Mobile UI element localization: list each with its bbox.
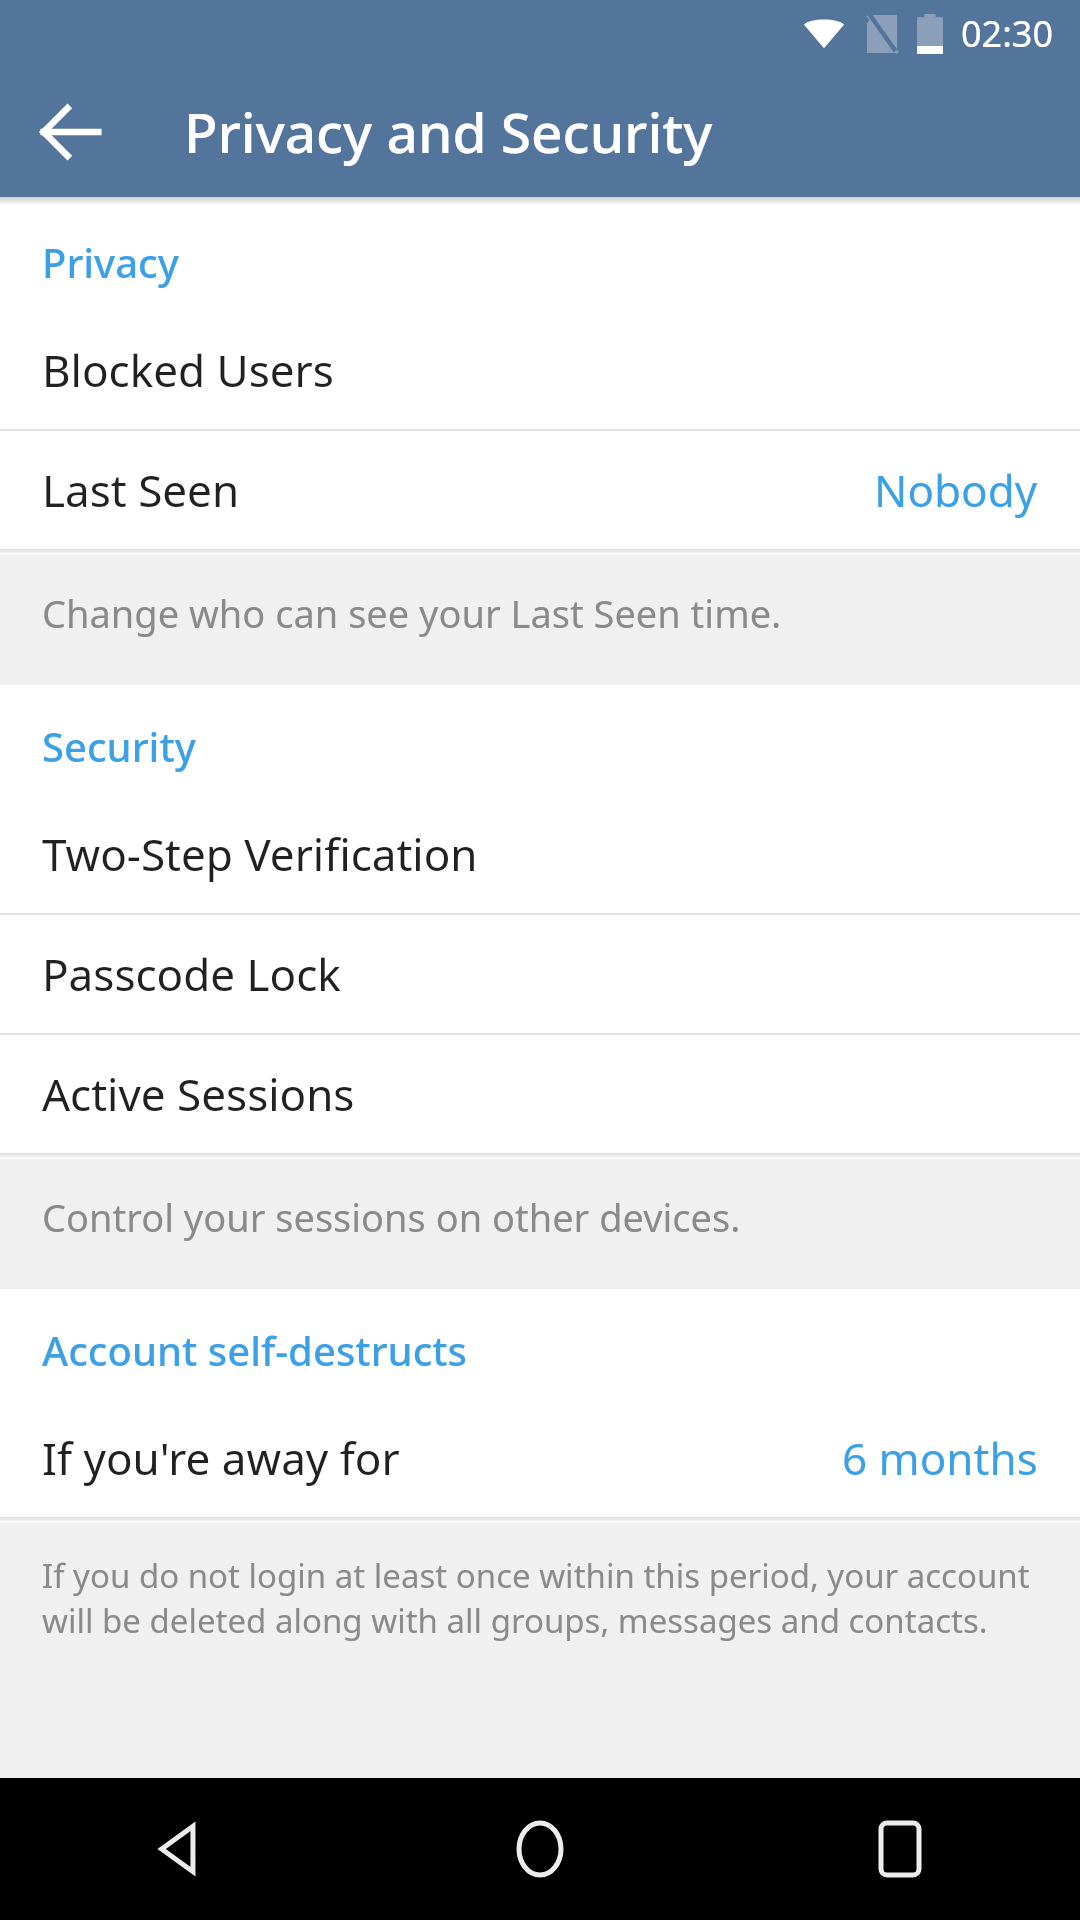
staticText: Control your sessions on other devices. bbox=[42, 1191, 741, 1243]
staticText: Change who can see your Last Seen time. bbox=[42, 587, 782, 639]
button[interactable]: Last Seen bbox=[0, 431, 1080, 549]
button[interactable]: Active Sessions bbox=[0, 1035, 1080, 1153]
staticText: Privacy and Security bbox=[184, 94, 713, 169]
staticText: Security bbox=[42, 719, 196, 773]
staticText: 6 months bbox=[842, 1428, 1038, 1488]
staticText: Passcode Lock bbox=[42, 944, 1038, 1004]
staticText: Blocked Users bbox=[42, 340, 1038, 400]
staticText: Privacy bbox=[42, 235, 179, 289]
staticText: Nobody bbox=[874, 460, 1038, 520]
staticText: If you're away for bbox=[42, 1428, 842, 1488]
staticText: Last Seen bbox=[42, 460, 874, 520]
staticText: 02:30 bbox=[961, 9, 1054, 58]
button[interactable]: Recent apps bbox=[720, 1778, 1080, 1920]
button[interactable]: Home bbox=[360, 1778, 720, 1920]
button[interactable]: Blocked Users bbox=[0, 311, 1080, 429]
staticText: Active Sessions bbox=[42, 1064, 1038, 1124]
button[interactable]: Back bbox=[0, 1778, 360, 1920]
button[interactable]: Two-Step Verification bbox=[0, 795, 1080, 913]
button[interactable]: Back bbox=[16, 77, 126, 187]
button[interactable]: Passcode Lock bbox=[0, 915, 1080, 1033]
button[interactable]: If you're away for bbox=[0, 1399, 1080, 1517]
staticText: Two-Step Verification bbox=[42, 824, 1038, 884]
staticText: Account self-destructs bbox=[42, 1323, 468, 1377]
staticText: If you do not login at least once within… bbox=[42, 1553, 1038, 1642]
